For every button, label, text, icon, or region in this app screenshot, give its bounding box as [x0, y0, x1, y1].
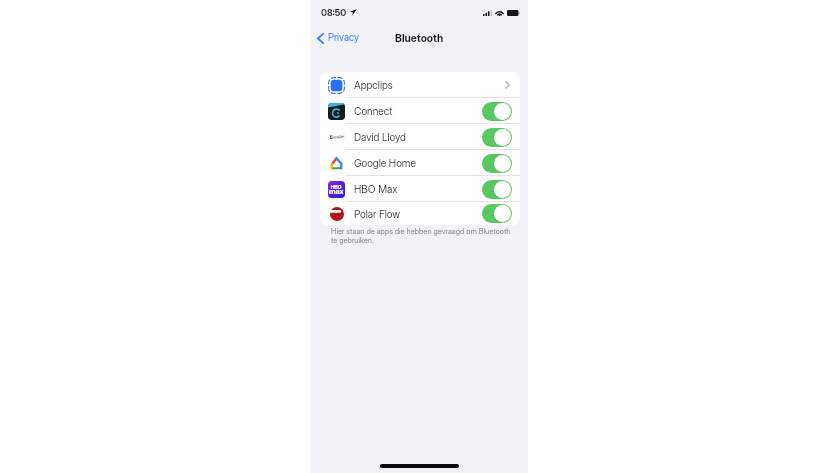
staticText: HBO Max: [354, 183, 398, 195]
staticText: Appclips: [354, 79, 393, 91]
button[interactable]: Toggle Bluetooth access: [482, 102, 512, 121]
staticText: Google Home: [354, 157, 416, 169]
button[interactable]: David Lloyd: [320, 124, 520, 150]
button[interactable]: HBO: [320, 176, 520, 202]
button[interactable]: Polar Flow: [320, 202, 520, 225]
button[interactable]: Google Home: [320, 150, 520, 176]
button[interactable]: Toggle Bluetooth access: [482, 204, 512, 223]
button[interactable]: Appclips: [320, 72, 520, 98]
staticText: Hier staan de apps die hebben gevraagd o…: [331, 227, 511, 245]
staticText: David Lloyd: [354, 131, 406, 143]
button[interactable]: Privacy: [313, 30, 364, 46]
staticText: HBO: [331, 184, 342, 190]
staticText: Bluetooth: [395, 32, 444, 45]
staticText: Connect: [354, 105, 393, 117]
button[interactable]: Toggle Bluetooth access: [482, 154, 512, 173]
button[interactable]: Toggle Bluetooth access: [482, 128, 512, 147]
staticText: max: [329, 187, 344, 196]
button[interactable]: Connect: [320, 98, 520, 124]
button[interactable]: Toggle Bluetooth access: [482, 180, 512, 199]
staticText: Privacy: [328, 32, 359, 44]
staticText: 08:50: [321, 7, 347, 18]
staticText: Polar Flow: [354, 208, 401, 220]
